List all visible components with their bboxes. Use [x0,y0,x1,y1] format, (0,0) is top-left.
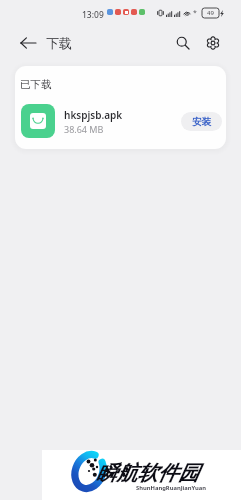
staticText: 13:09 [82,9,104,21]
staticText: hkspjsb.apk [64,108,123,122]
button[interactable]: Back [16,31,40,55]
button[interactable]: Settings [201,31,225,55]
staticText: 安装 [192,116,211,128]
staticText: 38.64 MB [64,123,104,135]
staticText: 已下载 [20,78,52,91]
button[interactable]: Search [171,31,195,55]
staticText: 下载 [46,35,72,51]
staticText: 49 [207,9,214,17]
staticText: * [193,8,197,18]
button[interactable]: hkspjsb.apk [15,100,226,142]
staticText: ShunHangRuanJianYuan [136,484,207,492]
staticText: 瞬航软件园 [96,460,199,486]
button[interactable]: 安装 [181,112,222,131]
